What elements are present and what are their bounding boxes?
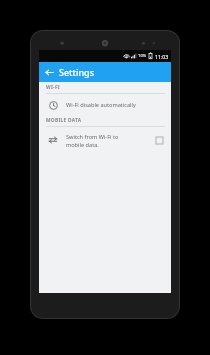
button[interactable]: Wi-Fi disable automatically bbox=[39, 94, 171, 115]
staticText: Settings bbox=[59, 66, 95, 78]
button[interactable]: Back bbox=[42, 65, 56, 79]
staticText: Wi-Fi disable automatically bbox=[66, 101, 136, 109]
button[interactable]: Switch from Wi-Fi to mobile data. bbox=[39, 127, 171, 153]
staticText: WI-FI bbox=[46, 84, 61, 91]
staticText: MOBILE DATA bbox=[46, 117, 82, 124]
staticText: 11:03 bbox=[155, 53, 169, 60]
button[interactable]: Toggle switch from Wi-Fi to mobile data bbox=[153, 134, 166, 147]
staticText: Switch from Wi-Fi to mobile data. bbox=[66, 133, 126, 148]
staticText: 10% bbox=[138, 53, 147, 59]
